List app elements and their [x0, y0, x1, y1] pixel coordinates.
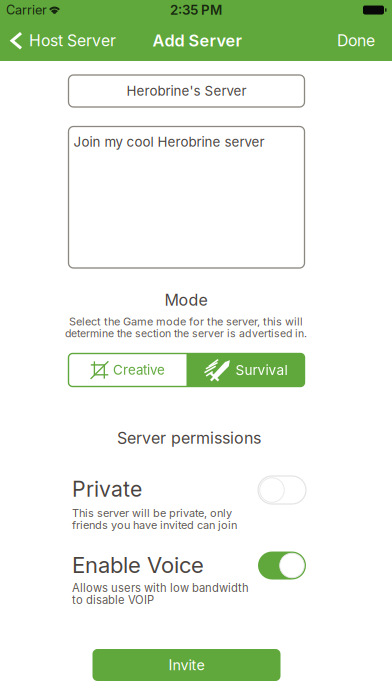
staticText: 2:35 PM	[170, 2, 222, 18]
staticText: Private	[72, 476, 142, 502]
staticText: Invite	[168, 656, 204, 674]
button[interactable]: Invite	[0, 0, 392, 696]
staticText: Server permissions	[117, 428, 261, 448]
staticText: Herobrine's Server	[126, 83, 246, 99]
staticText: Survival	[235, 362, 287, 378]
button[interactable]: Survival	[186, 353, 304, 386]
staticText: This server will be private, only	[72, 506, 232, 520]
staticText: Host Server	[29, 31, 116, 50]
staticText: Join my cool Herobrine server	[73, 134, 264, 150]
staticText: Creative	[113, 362, 165, 378]
button[interactable]: Done	[0, 0, 392, 696]
staticText: determine the section the server is adve…	[65, 327, 307, 340]
staticText: to disable VOIP	[72, 593, 154, 607]
staticText: Allows users with low bandwidth	[72, 581, 249, 595]
staticText: Carrier	[6, 2, 47, 18]
staticText: Add Server	[152, 31, 241, 50]
staticText: Select the Game mode for the server, thi…	[69, 315, 303, 328]
staticText: Enable Voice	[72, 552, 204, 578]
staticText: Mode	[164, 290, 207, 310]
staticText: Done	[337, 31, 375, 50]
button[interactable]: Creative	[68, 353, 186, 386]
staticText: friends you have invited can join	[72, 518, 237, 532]
button[interactable]: Host Server	[0, 0, 392, 696]
